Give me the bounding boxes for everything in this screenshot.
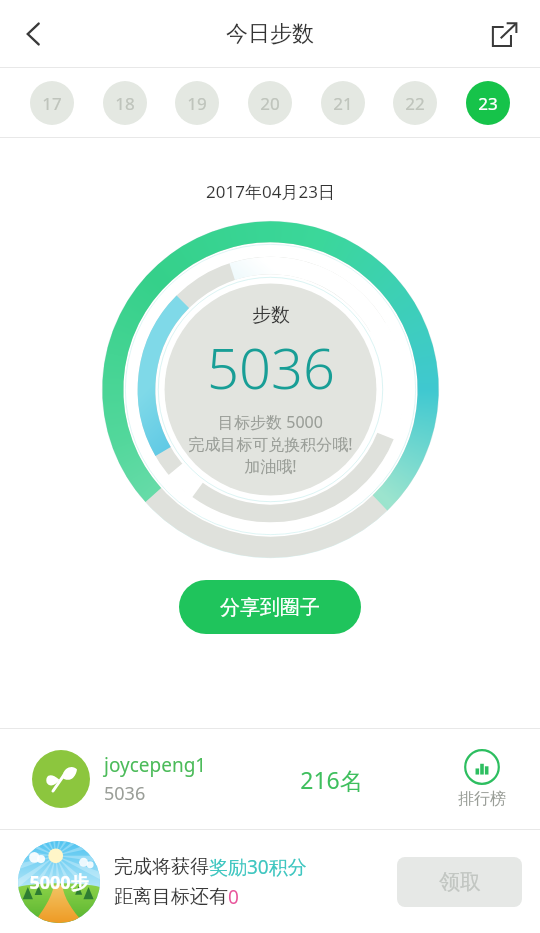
button[interactable]: 17: [30, 81, 74, 125]
staticText: 20: [260, 92, 280, 115]
staticText: 排行榜: [458, 789, 506, 809]
staticText: 17: [42, 92, 62, 115]
staticText: 18: [115, 92, 135, 115]
button[interactable]: 18: [103, 81, 147, 125]
staticText: 加油哦!: [244, 455, 297, 477]
button[interactable]: 22: [393, 81, 437, 125]
staticText: 完成目标可兑换积分哦!: [188, 433, 353, 455]
staticText: 5000步: [29, 870, 89, 895]
staticText: 2017年04月23日: [206, 180, 335, 203]
staticText: 目标步数 5000: [218, 411, 323, 433]
button[interactable]: 分享到圈子: [179, 580, 361, 634]
staticText: 22: [405, 92, 425, 115]
staticText: 领取: [439, 869, 481, 895]
staticText: 0: [228, 884, 239, 910]
staticText: 分享到圈子: [220, 595, 320, 620]
button[interactable]: 21: [321, 81, 365, 125]
staticText: 今日步数: [226, 20, 314, 48]
button[interactable]: 23: [466, 81, 510, 125]
staticText: 完成将获得: [114, 855, 209, 879]
staticText: 奖励30积分: [209, 854, 307, 880]
button[interactable]: 领取: [397, 857, 522, 907]
staticText: 步数: [252, 303, 290, 327]
staticText: 距离目标还有: [114, 885, 228, 909]
button[interactable]: joycepeng1: [0, 729, 540, 829]
staticText: 5036: [207, 329, 335, 405]
staticText: 23: [478, 92, 498, 115]
staticText: joycepeng1: [104, 752, 207, 778]
button[interactable]: 20: [248, 81, 292, 125]
button[interactable]: 排行榜: [456, 749, 508, 809]
button[interactable]: Share: [476, 6, 532, 62]
button[interactable]: Back: [6, 6, 62, 62]
button[interactable]: 19: [175, 81, 219, 125]
staticText: 5036: [104, 781, 146, 806]
staticText: 21: [333, 92, 353, 115]
staticText: 19: [187, 92, 207, 115]
staticText: 216名: [300, 764, 363, 795]
